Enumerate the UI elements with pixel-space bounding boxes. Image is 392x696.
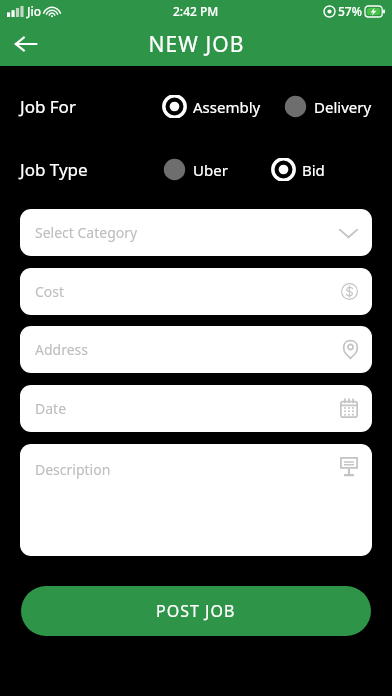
staticText: NEW JOB (148, 30, 245, 59)
staticText: Job For (20, 95, 76, 118)
button[interactable]: Cost (20, 268, 372, 315)
button[interactable]: Assembly (162, 95, 262, 118)
staticText: POST JOB (156, 600, 236, 622)
staticText: Date (35, 399, 67, 418)
staticText: Cost (35, 282, 65, 301)
button[interactable]: Uber (162, 158, 229, 181)
button[interactable]: Address (20, 326, 372, 373)
staticText: 57% (338, 3, 362, 19)
button[interactable]: Select category (20, 209, 372, 256)
staticText: Assembly (193, 97, 261, 117)
button[interactable]: Back (6, 24, 46, 64)
staticText: Uber (193, 160, 228, 180)
button[interactable]: Delivery (283, 95, 373, 118)
staticText: Job Type (20, 158, 88, 181)
staticText: Select Category (35, 223, 138, 242)
button[interactable]: Description (20, 444, 372, 556)
button[interactable]: POST JOB (21, 586, 371, 636)
staticText: Jio (27, 3, 42, 19)
staticText: Description (35, 460, 111, 479)
button[interactable]: Bid (271, 158, 326, 181)
staticText: Address (35, 340, 88, 359)
button[interactable]: Date (20, 385, 372, 432)
staticText: 2:42 PM (173, 3, 219, 19)
staticText: Delivery (314, 97, 372, 117)
staticText: Bid (302, 160, 325, 180)
